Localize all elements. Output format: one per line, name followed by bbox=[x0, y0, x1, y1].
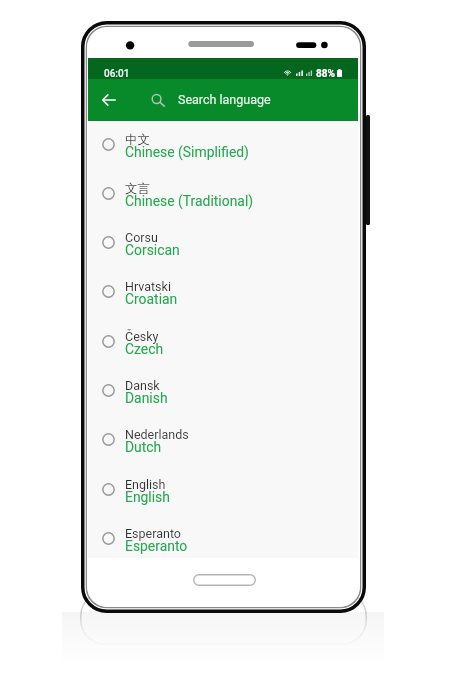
button[interactable]: Hrvatski bbox=[88, 267, 358, 316]
staticText: Chinese (Simplified) bbox=[125, 144, 249, 160]
staticText: 中文 bbox=[125, 132, 150, 148]
staticText: Corsican bbox=[125, 242, 180, 258]
staticText: Esperanto bbox=[125, 526, 181, 541]
staticText: Dutch bbox=[125, 439, 162, 455]
staticText: Hrvatski bbox=[125, 279, 171, 294]
staticText: 06:01 bbox=[104, 68, 130, 80]
staticText: Search language bbox=[178, 92, 271, 107]
staticText: 文言 bbox=[125, 181, 150, 197]
button[interactable]: Česky bbox=[88, 317, 358, 366]
staticText: Česky bbox=[125, 329, 159, 344]
button[interactable]: English bbox=[88, 465, 358, 514]
button[interactable]: Nederlands bbox=[88, 415, 358, 464]
button[interactable]: Esperanto bbox=[88, 514, 358, 563]
button[interactable]: Dansk bbox=[88, 366, 358, 415]
staticText: English bbox=[125, 489, 170, 505]
staticText: Esperanto bbox=[125, 538, 188, 554]
staticText: Dansk bbox=[125, 378, 160, 393]
staticText: Nederlands bbox=[125, 427, 189, 442]
staticText: 88% bbox=[316, 68, 335, 80]
button[interactable]: Back bbox=[91, 84, 127, 116]
staticText: Chinese (Traditional) bbox=[125, 193, 254, 209]
button[interactable]: Search bbox=[143, 84, 173, 116]
button[interactable]: Corsu bbox=[88, 218, 358, 267]
button[interactable]: 文言 bbox=[88, 169, 358, 218]
staticText: English bbox=[125, 477, 166, 492]
staticText: Danish bbox=[125, 390, 168, 406]
button[interactable]: 中文 bbox=[88, 120, 358, 169]
staticText: Croatian bbox=[125, 291, 178, 307]
staticText: Czech bbox=[125, 341, 164, 357]
staticText: Corsu bbox=[125, 230, 158, 245]
button[interactable]: Home bbox=[193, 574, 256, 586]
